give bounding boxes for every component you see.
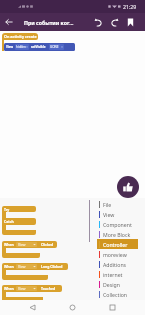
button[interactable]: Redo — [106, 13, 122, 31]
button[interactable]: Add event — [117, 176, 139, 198]
button[interactable]: Back — [0, 13, 18, 31]
staticText: On activity create — [4, 34, 37, 39]
button[interactable]: Back — [25, 300, 40, 315]
staticText: View — [6, 45, 14, 49]
button[interactable]: Try — [2, 206, 36, 235]
staticText: internet — [103, 271, 123, 278]
staticText: hidden — [16, 45, 26, 49]
staticText: View — [18, 242, 26, 247]
staticText: Design — [103, 281, 120, 288]
staticText: 21:29 — [123, 3, 137, 10]
staticText: moreview — [103, 251, 127, 258]
button[interactable]: Component — [97, 219, 138, 229]
button[interactable]: View — [97, 209, 138, 219]
button[interactable]: File — [97, 199, 138, 209]
button[interactable]: View — [4, 43, 75, 51]
staticText: Controller — [103, 241, 128, 248]
button[interactable]: When — [2, 285, 62, 302]
button[interactable]: When — [2, 241, 57, 258]
button[interactable]: On activity create — [2, 33, 38, 40]
staticText: File — [103, 201, 112, 208]
staticText: When — [4, 286, 14, 291]
staticText: Long Clicked — [41, 264, 63, 269]
staticText: View — [18, 286, 26, 291]
staticText: GONE — [50, 45, 59, 49]
staticText: Clicked — [41, 242, 54, 247]
button[interactable]: Design — [97, 279, 138, 289]
staticText: Component — [103, 221, 132, 228]
staticText: View — [18, 264, 26, 269]
button[interactable]: moreview — [97, 249, 138, 259]
button[interactable]: Collection — [97, 289, 138, 299]
staticText: Try — [4, 207, 10, 212]
staticText: Touched — [41, 286, 56, 291]
staticText: When — [4, 264, 14, 269]
button[interactable]: More Block — [97, 229, 138, 239]
staticText: Additions — [103, 261, 127, 268]
staticText: More Block — [103, 231, 131, 238]
staticText: When — [4, 242, 14, 247]
staticText: View — [103, 211, 115, 218]
staticText: Collection — [103, 291, 128, 298]
button[interactable]: Controller — [97, 239, 138, 249]
staticText: При событии ког... — [24, 19, 74, 26]
staticText: setVisible — [31, 45, 46, 49]
button[interactable]: Additions — [97, 259, 138, 269]
button[interactable]: Undo — [90, 13, 106, 31]
button[interactable]: When — [2, 263, 68, 280]
button[interactable]: Save — [122, 13, 138, 31]
button[interactable]: Recents — [105, 300, 120, 315]
button[interactable]: internet — [97, 269, 138, 279]
staticText: Catch — [4, 219, 14, 224]
button[interactable]: Home — [65, 300, 80, 315]
